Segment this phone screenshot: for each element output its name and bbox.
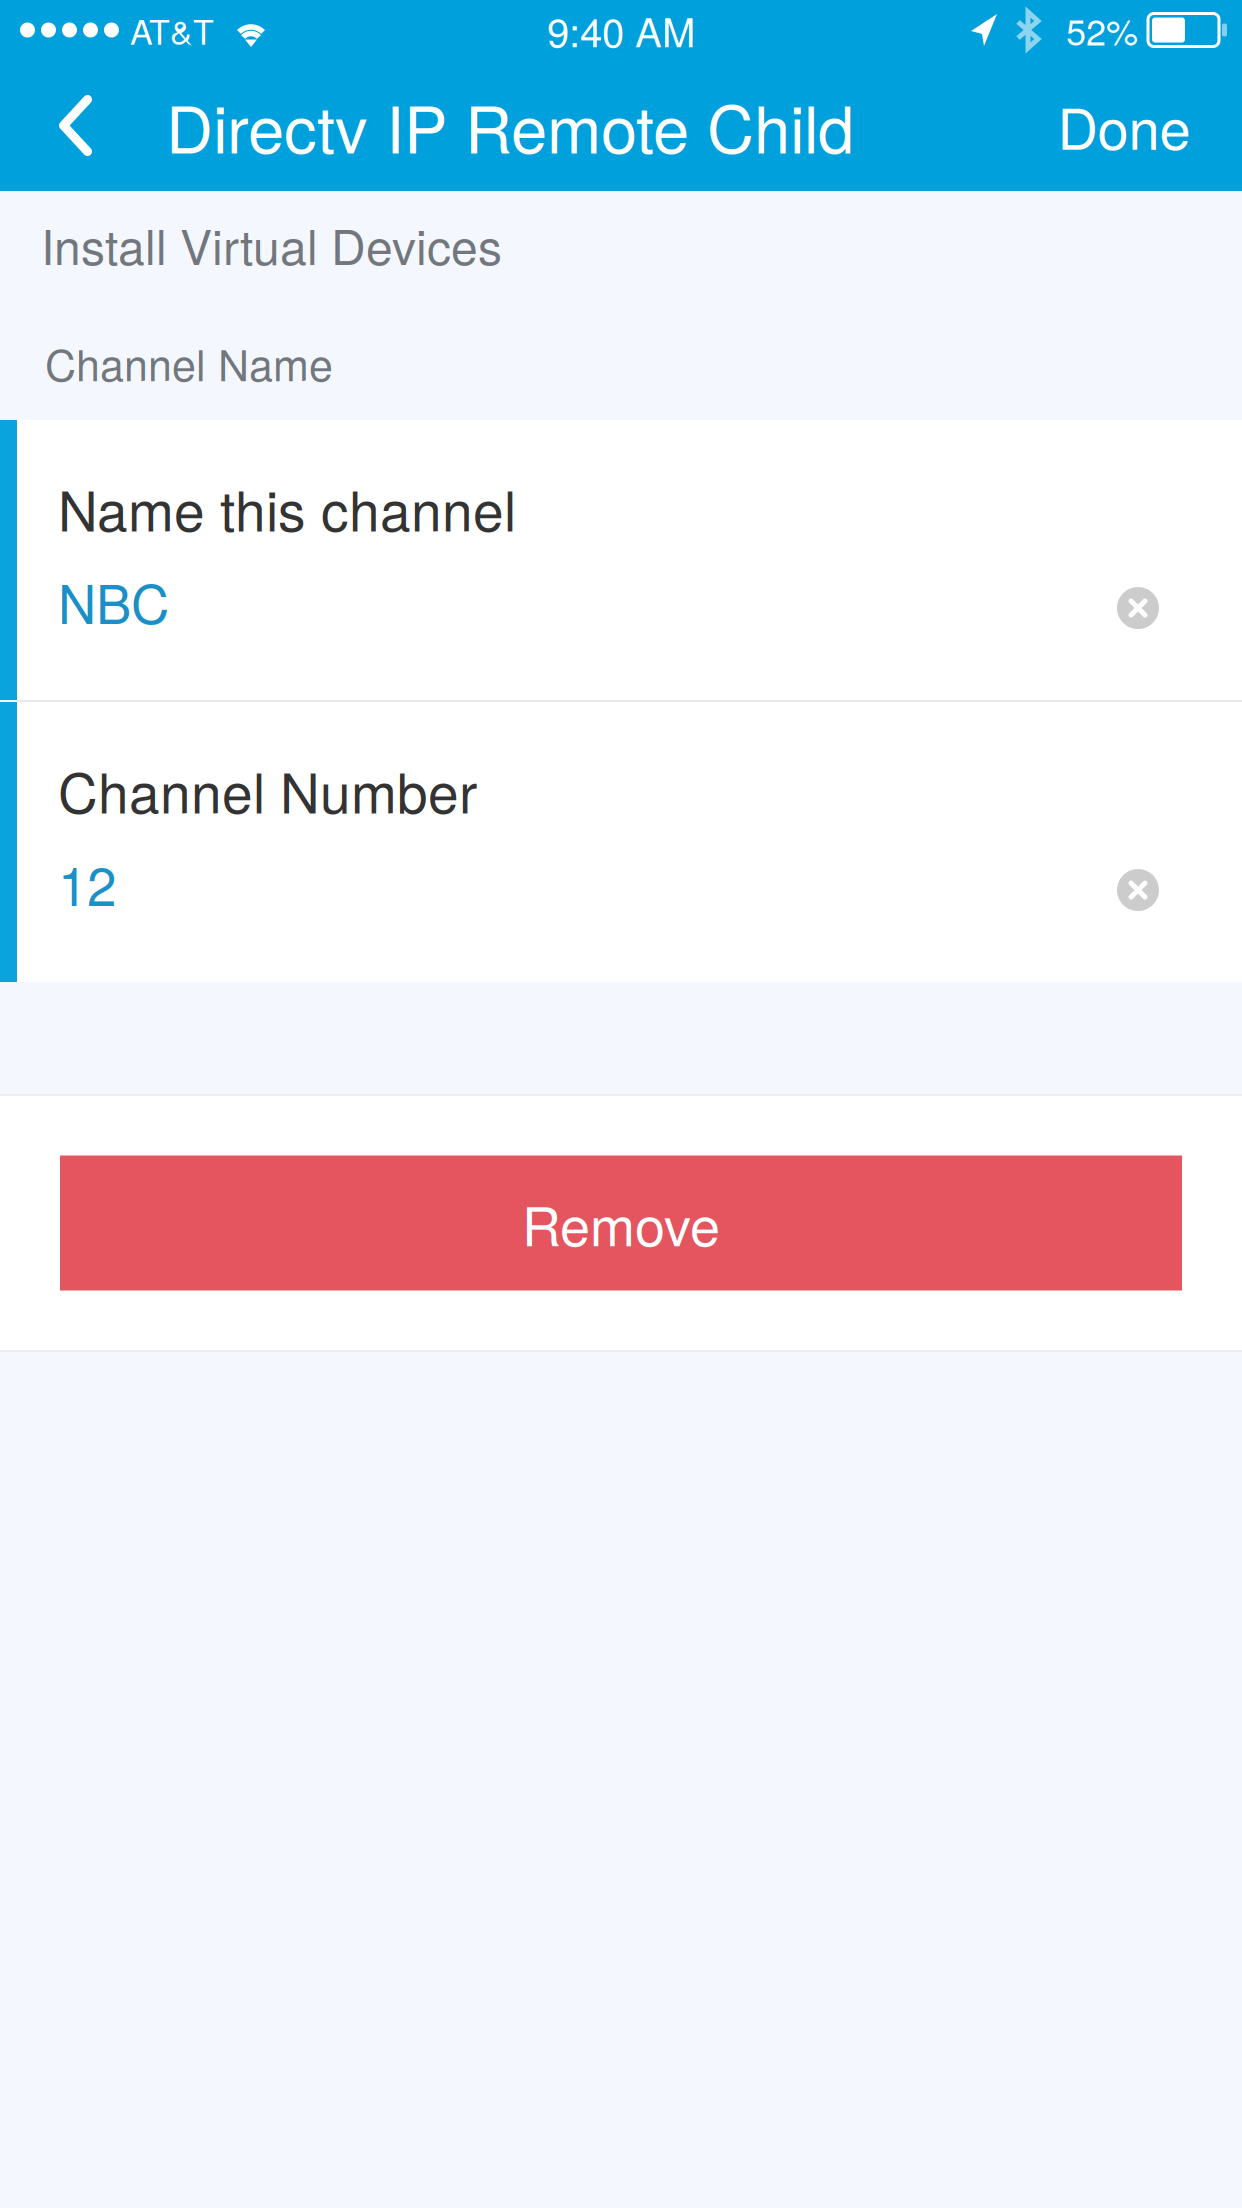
staticText: Remove <box>522 1184 720 1262</box>
button[interactable]: Back <box>0 60 151 191</box>
staticText: 9:40 AM <box>547 1 695 59</box>
staticText: AT&T <box>130 6 214 54</box>
staticText: 52% <box>1066 4 1138 56</box>
staticText: Channel Name <box>45 332 333 394</box>
button[interactable]: Remove <box>60 1155 1182 1290</box>
staticText: Done <box>1057 85 1190 166</box>
staticText: Name this channel <box>58 468 516 547</box>
staticText: NBC <box>58 563 169 639</box>
button[interactable]: Clear text <box>1117 869 1159 911</box>
staticText: Install Virtual Devices <box>41 210 502 279</box>
button[interactable]: Done <box>1032 60 1216 191</box>
staticText: 12 <box>58 845 116 921</box>
staticText: Directv IP Remote Child <box>166 79 854 172</box>
button[interactable]: Channel Number <box>0 702 1242 982</box>
button[interactable]: Name this channel <box>0 420 1242 700</box>
button[interactable]: Clear text <box>1117 587 1159 629</box>
staticText: Channel Number <box>58 750 477 829</box>
